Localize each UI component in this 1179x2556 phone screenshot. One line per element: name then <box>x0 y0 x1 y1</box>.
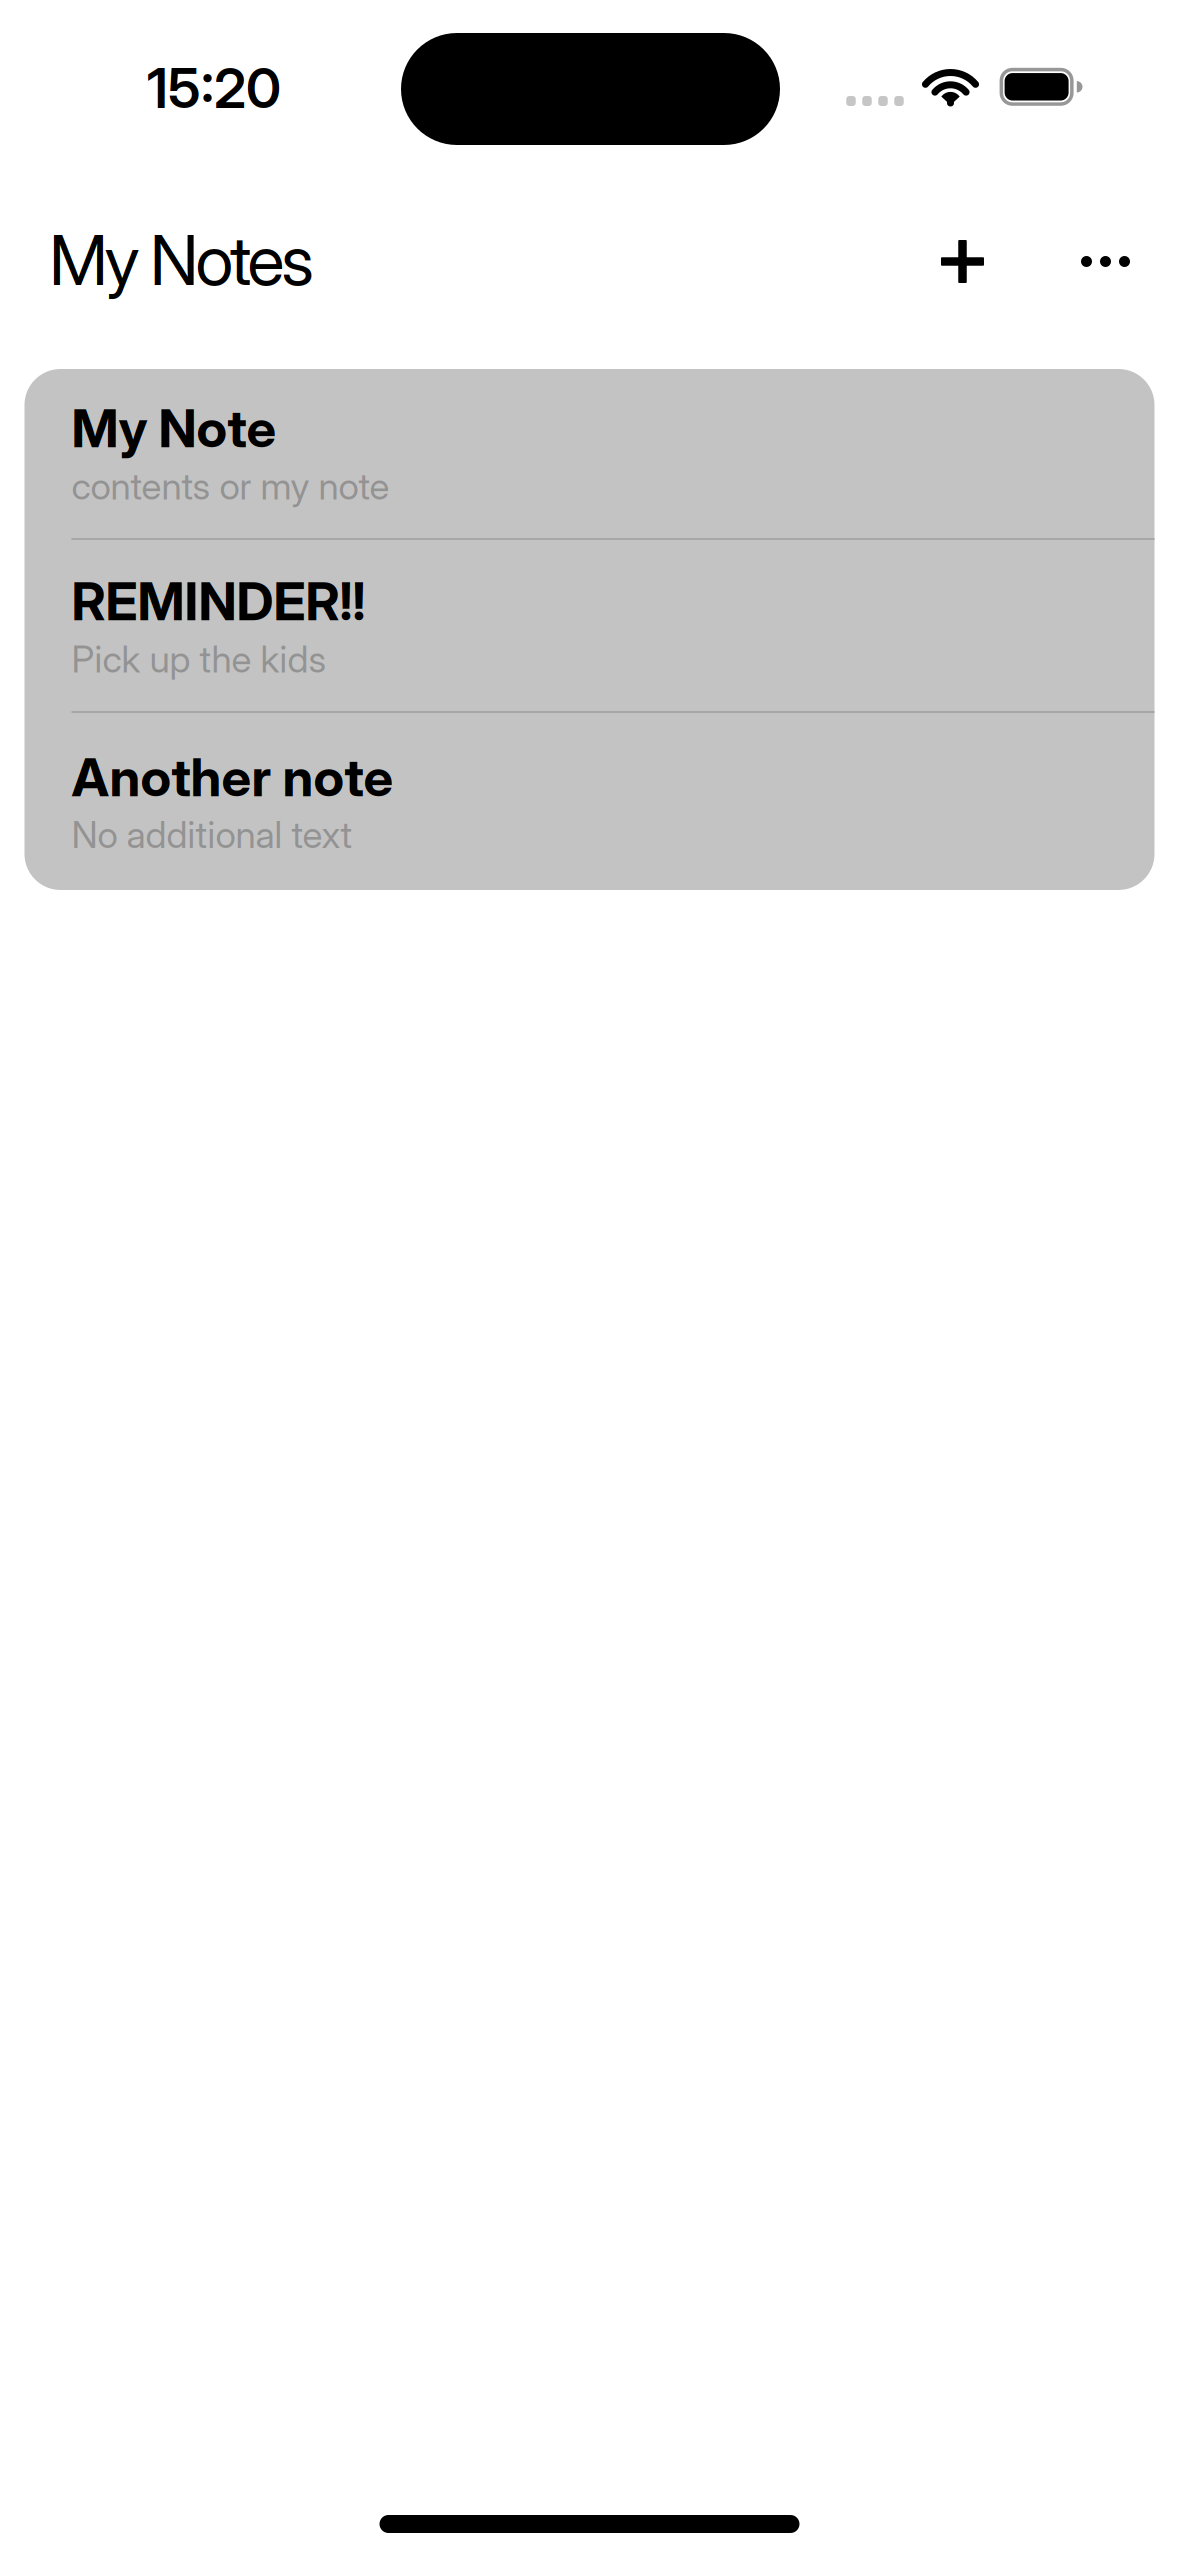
button[interactable]: New note <box>940 238 984 282</box>
staticText: Pick up the kids <box>71 637 326 681</box>
staticText: Another note <box>71 745 393 809</box>
button[interactable]: More options <box>1080 238 1130 282</box>
button[interactable]: Another note <box>24 713 1154 890</box>
staticText: REMINDER!! <box>71 569 365 633</box>
staticText: No additional text <box>71 812 352 857</box>
staticText: contents or my note <box>71 464 389 508</box>
staticText: My Notes <box>49 218 314 301</box>
button[interactable]: REMINDER!! <box>24 540 1154 711</box>
staticText: 15:20 <box>147 55 281 121</box>
button[interactable]: My Note <box>24 369 1154 538</box>
staticText: My Note <box>71 396 276 460</box>
